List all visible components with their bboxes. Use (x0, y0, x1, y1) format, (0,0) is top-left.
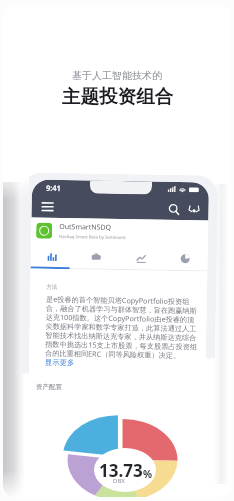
staticText: % (143, 467, 153, 481)
button[interactable]: Menu (41, 202, 54, 211)
staticText: 主题投资组合 (62, 85, 173, 108)
button[interactable]: eToro logo (187, 203, 201, 216)
button[interactable]: Tab 3 (124, 247, 158, 268)
staticText: 资产配置 (36, 383, 62, 391)
staticText: OutSmartNSDQ (59, 222, 111, 233)
button[interactable]: Search (167, 203, 181, 216)
staticText: 显示更多 (45, 358, 75, 367)
staticText: 是e投睿的首个智能贝塔CopyPortfolio投资组合，融合了机器学习与群体智… (45, 294, 200, 360)
button[interactable]: Tab 4 (168, 248, 202, 268)
staticText: 9:41 (46, 183, 61, 193)
staticText: Nasdaq Smart Beta by Sentiment (59, 233, 126, 240)
staticText: 基于人工智能技术的 (72, 69, 162, 82)
staticText: 方法 (46, 284, 57, 291)
staticText: DBX (113, 477, 125, 485)
button[interactable]: Tab 1 (35, 245, 69, 266)
button[interactable]: Tab 2 (79, 246, 113, 267)
staticText: 13.73 (99, 459, 143, 482)
